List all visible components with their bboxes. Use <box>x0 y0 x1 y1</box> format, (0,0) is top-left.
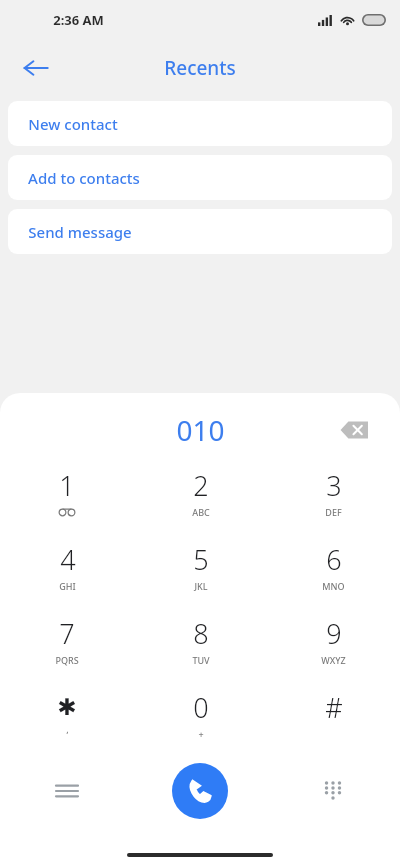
staticText: , <box>66 723 69 735</box>
staticText: 8 <box>193 615 209 652</box>
staticText: Recents <box>164 55 236 81</box>
button[interactable]: 8 <box>134 603 267 677</box>
button[interactable]: New contact <box>8 101 392 146</box>
staticText: Send message <box>28 222 132 242</box>
button[interactable]: 7 <box>0 603 134 677</box>
button[interactable]: # <box>267 677 400 751</box>
staticText: 3 <box>326 467 342 504</box>
staticText: JKL <box>194 580 208 592</box>
button[interactable]: Call <box>172 763 228 819</box>
staticText: PQRS <box>55 654 79 666</box>
staticText: New contact <box>28 114 118 134</box>
staticText: + <box>198 728 204 740</box>
button[interactable]: Send message <box>8 209 392 254</box>
staticText: # <box>325 689 343 726</box>
staticText: 010 <box>176 411 225 449</box>
button[interactable]: 0 <box>134 677 267 751</box>
staticText: 2:36 AM <box>53 11 104 29</box>
button[interactable]: Add to contacts <box>8 155 392 200</box>
button[interactable]: 3 <box>267 455 400 529</box>
staticText: Add to contacts <box>28 168 140 188</box>
button[interactable]: 9 <box>267 603 400 677</box>
staticText: 9 <box>326 615 342 652</box>
staticText: 2 <box>193 467 209 504</box>
button[interactable]: More options <box>45 769 89 813</box>
staticText: ✱ <box>57 694 77 721</box>
button[interactable]: Dialpad <box>311 769 355 813</box>
button[interactable]: 2 <box>134 455 267 529</box>
staticText: 6 <box>326 541 342 578</box>
staticText: DEF <box>325 506 342 518</box>
button[interactable]: 1 <box>0 455 134 529</box>
button[interactable]: Back <box>18 50 54 86</box>
button[interactable]: Backspace <box>334 410 374 450</box>
staticText: ABC <box>192 506 210 518</box>
button[interactable]: ✱ <box>0 677 134 751</box>
staticText: 0 <box>193 689 209 726</box>
staticText: 1 <box>59 467 75 504</box>
button[interactable]: 5 <box>134 529 267 603</box>
staticText: WXYZ <box>321 654 346 666</box>
staticText: TUV <box>192 654 210 666</box>
staticText: 4 <box>60 541 76 578</box>
staticText: 7 <box>59 615 75 652</box>
button[interactable]: 4 <box>0 529 134 603</box>
staticText: MNO <box>322 580 345 592</box>
button[interactable]: 6 <box>267 529 400 603</box>
staticText: GHI <box>59 580 76 592</box>
staticText: 5 <box>193 541 209 578</box>
